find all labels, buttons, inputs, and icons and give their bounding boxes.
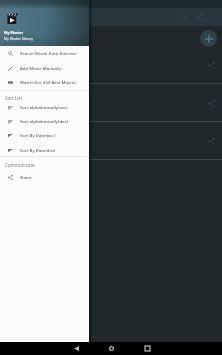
staticText: Sort alphabetically(asc) [20,104,68,110]
staticText: My Movies Library [4,36,33,41]
staticText: My Movies [4,30,24,35]
button[interactable]: Share movie [205,135,217,147]
button[interactable]: Sort By Date(des) [0,143,89,157]
staticText: Sort alphabetically(des) [20,118,68,124]
button[interactable]: Watch Our 250 Best Movies [0,75,89,89]
button[interactable]: Back [70,342,83,355]
button[interactable]: Sort alphabetically(asc) [0,100,89,114]
button[interactable]: Recents [141,342,154,355]
button[interactable]: Share movie [205,59,217,71]
staticText: Share [20,174,32,180]
button[interactable]: Sort By Date(asc) [0,128,89,142]
staticText: Watch Our 250 Best Movies [20,79,77,85]
button[interactable]: Home [105,342,118,355]
button[interactable]: Share movie [0,84,222,121]
staticText: Communicate [5,162,35,168]
button[interactable]: Share movie [0,122,222,159]
staticText: Add Movie Manually [20,65,62,71]
staticText: Sort List [5,95,23,101]
staticText: Sort By Date(des) [20,147,56,153]
button[interactable]: Add movie [200,30,217,47]
button[interactable]: Share movie [205,97,217,109]
button[interactable]: Sort alphabetically(des) [0,114,89,128]
button[interactable]: Share [0,170,89,184]
staticText: Sort By Date(asc) [20,132,55,138]
button[interactable]: Add Movie Manually [0,61,89,75]
button[interactable]: Share [192,9,208,25]
button[interactable]: Search Movie from Internet [0,46,89,60]
button[interactable]: Share movie [0,46,222,83]
staticText: Search Movie from Internet [20,50,77,56]
